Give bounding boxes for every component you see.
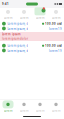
staticText: 100.00 usd [45,44,62,47]
button[interactable]: Quick action [48,7,64,20]
button[interactable]: Lorem [16,100,32,112]
button[interactable]: Quick action [32,7,48,20]
staticText: Lorem [52,109,60,112]
staticText: Lorem ipsum, d [7,27,28,31]
staticText: Lorem ipsum, d [7,49,28,53]
button[interactable]: Quick action [16,7,32,20]
staticText: Lorem [36,16,44,20]
staticText: Lorem [4,109,12,112]
staticText: 9:41 [2,2,9,6]
button[interactable]: Lorem [32,100,48,112]
staticText: Lorem [36,109,44,112]
staticText: 100.00 usd [45,22,62,25]
staticText: Lorem [52,16,60,20]
staticText: lorem 19 [49,49,62,53]
staticText: lorem 19 [49,27,62,31]
staticText: Lorem [20,109,28,112]
staticText: Lorem ipsum, d [7,22,28,25]
staticText: Lorem [20,16,28,20]
staticText: Lorem [4,16,12,20]
staticText: lorem ipsum dolor [2,37,28,40]
button[interactable]: Quick action [0,7,16,20]
staticText: Lorem ipsum, d [7,44,28,47]
button[interactable]: Lorem [48,100,64,112]
button[interactable]: Lorem [0,100,16,112]
staticText: Lorem ipsum [2,33,21,36]
